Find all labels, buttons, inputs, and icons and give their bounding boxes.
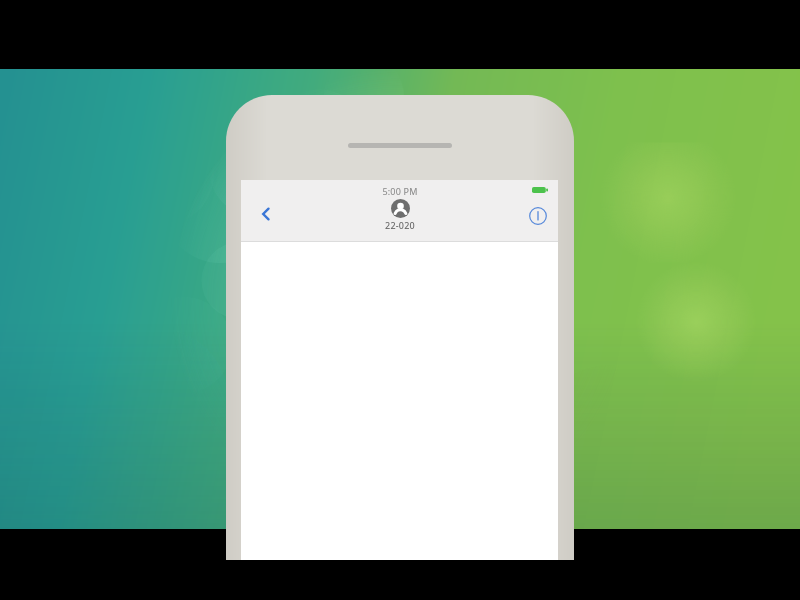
button[interactable]: Info (524, 202, 552, 230)
staticText: 5:00 PM (382, 185, 418, 197)
button[interactable]: Back (249, 197, 283, 231)
staticText: 22-020 (385, 219, 415, 231)
